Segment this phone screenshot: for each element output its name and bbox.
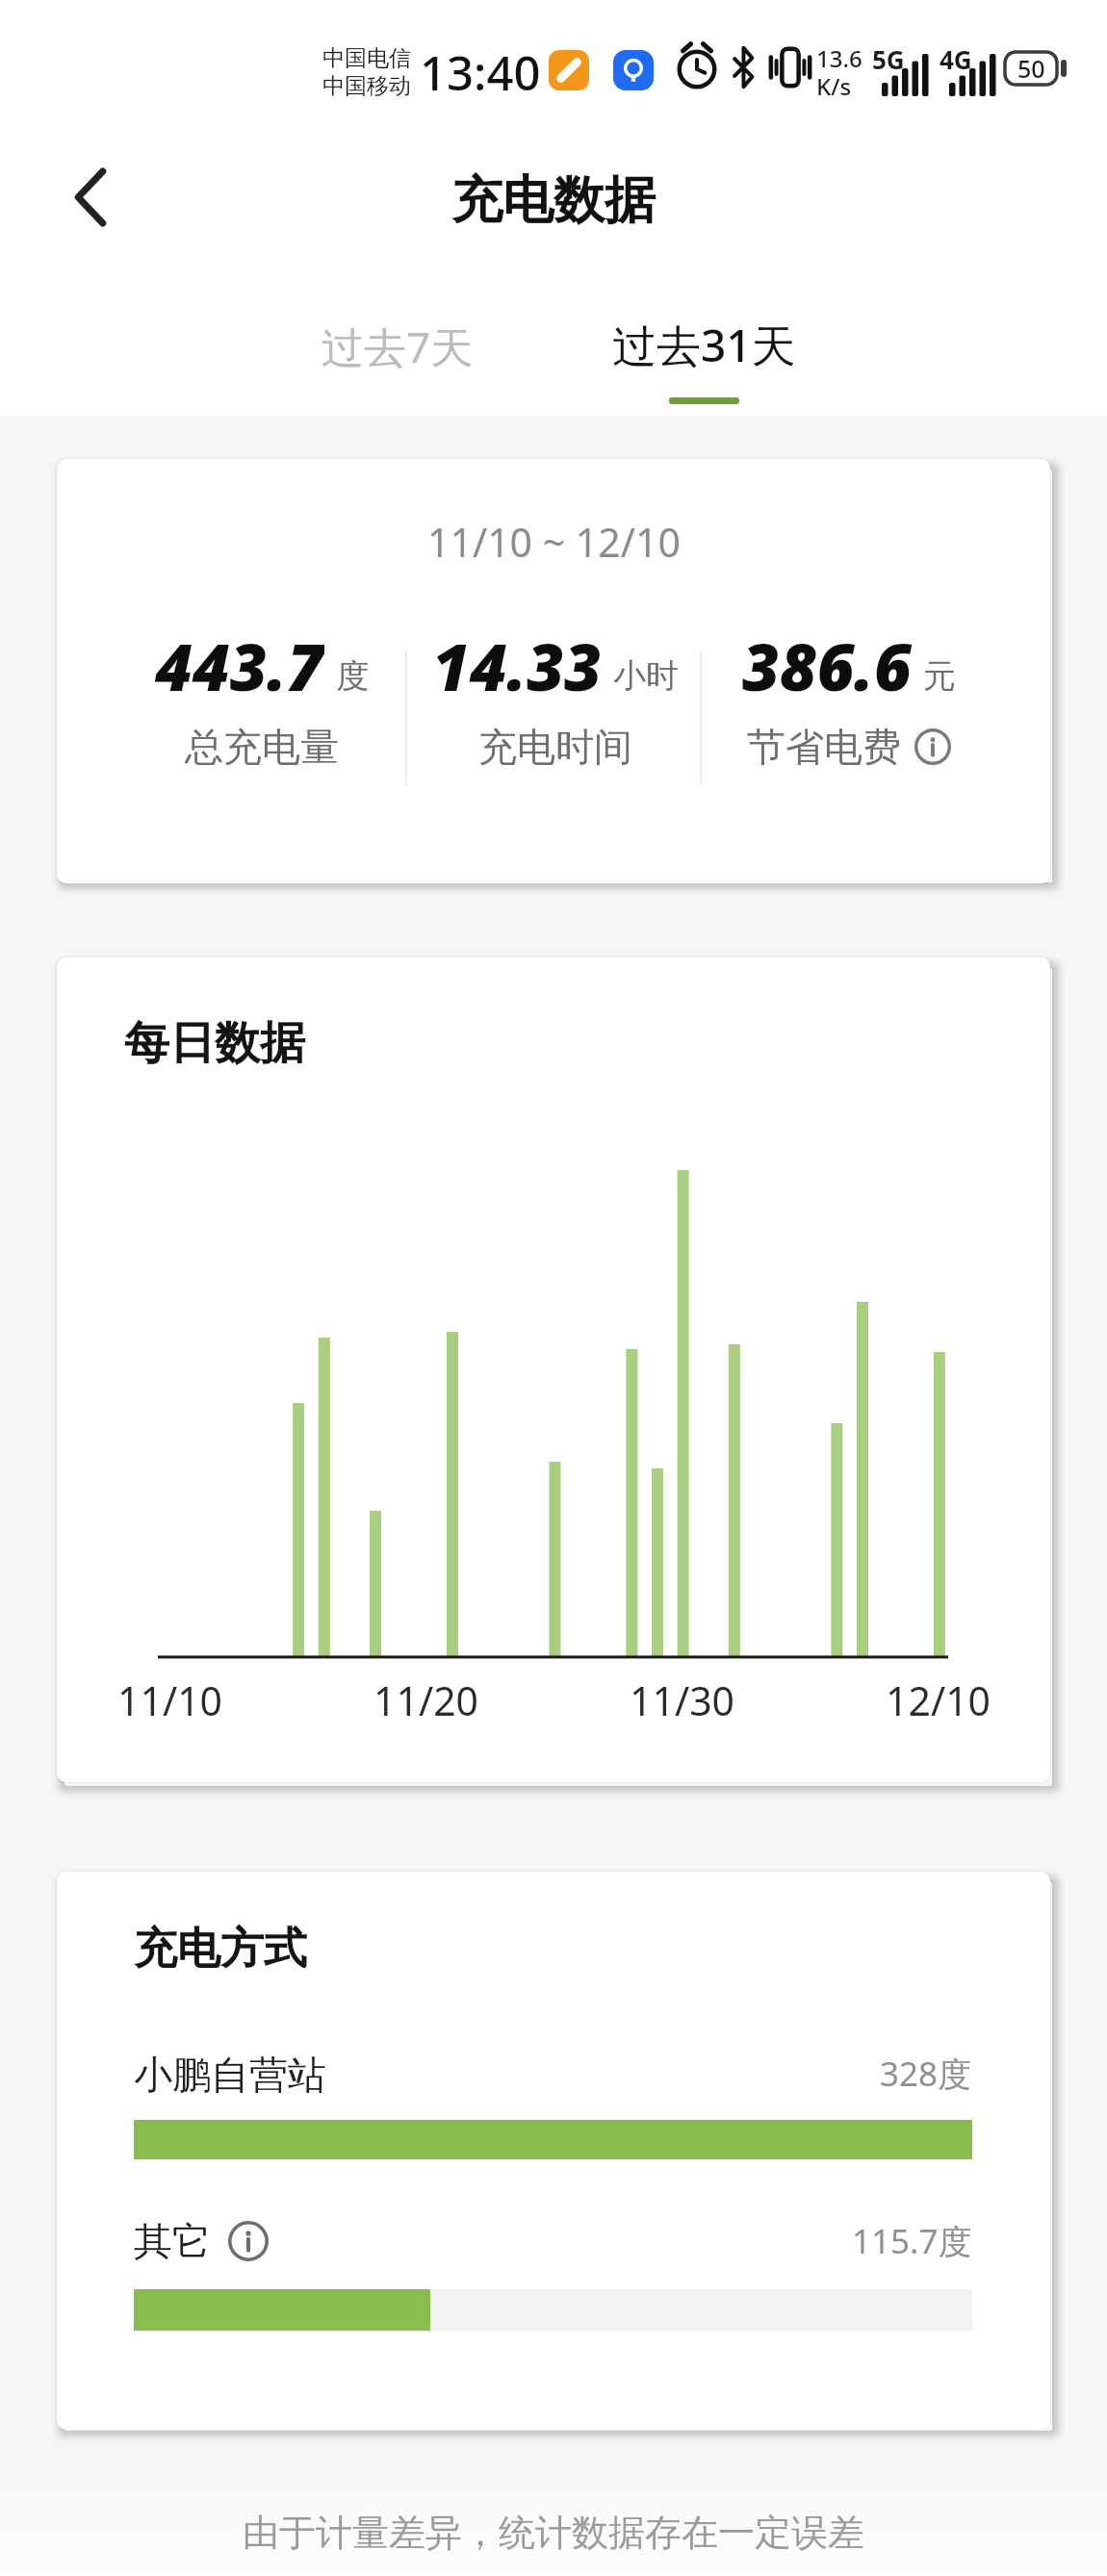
staticText: 中国电信 中国移动 <box>322 44 411 99</box>
staticText: 11/10 ~ 12/10 <box>427 515 681 565</box>
staticText: 11/30 <box>630 1673 735 1725</box>
button[interactable] <box>914 728 951 765</box>
staticText: 充电方式 <box>134 1922 307 1977</box>
staticText: 13:40 <box>420 40 541 105</box>
staticText: 115.7度 <box>852 2218 972 2264</box>
staticText: 过去31天 <box>612 315 796 375</box>
button[interactable] <box>71 167 110 227</box>
staticText: 5G <box>872 42 905 76</box>
staticText: 443.7 <box>155 622 324 704</box>
staticText: 节省电费 <box>747 723 901 771</box>
staticText: 14.33 <box>432 622 602 704</box>
staticText: 50 <box>1017 52 1045 85</box>
staticText: 度 <box>336 655 369 697</box>
staticText: 4G <box>940 42 972 76</box>
staticText: 充电数据 <box>451 168 656 233</box>
staticText: 元 <box>923 655 956 697</box>
button[interactable]: 过去31天 <box>559 306 848 383</box>
staticText: 11/10 <box>117 1673 223 1725</box>
staticText: 386.6 <box>742 622 912 704</box>
staticText: 328度 <box>880 2051 972 2097</box>
staticText: 12/10 <box>886 1673 991 1725</box>
staticText: 过去7天 <box>322 318 474 375</box>
staticText: 总充电量 <box>185 723 339 771</box>
staticText: 小时 <box>613 655 679 697</box>
staticText: 每日数据 <box>124 1015 305 1072</box>
staticText: 11/20 <box>373 1673 479 1725</box>
staticText: 其它 <box>134 2217 211 2265</box>
staticText: 13.6 K/s <box>816 42 862 100</box>
staticText: 由于计量差异，统计数据存在一定误差 <box>243 2510 864 2556</box>
button[interactable]: 过去7天 <box>253 308 542 385</box>
staticText: 小鹏自营站 <box>134 2051 326 2099</box>
staticText: 充电时间 <box>478 723 632 771</box>
button[interactable] <box>228 2221 269 2261</box>
